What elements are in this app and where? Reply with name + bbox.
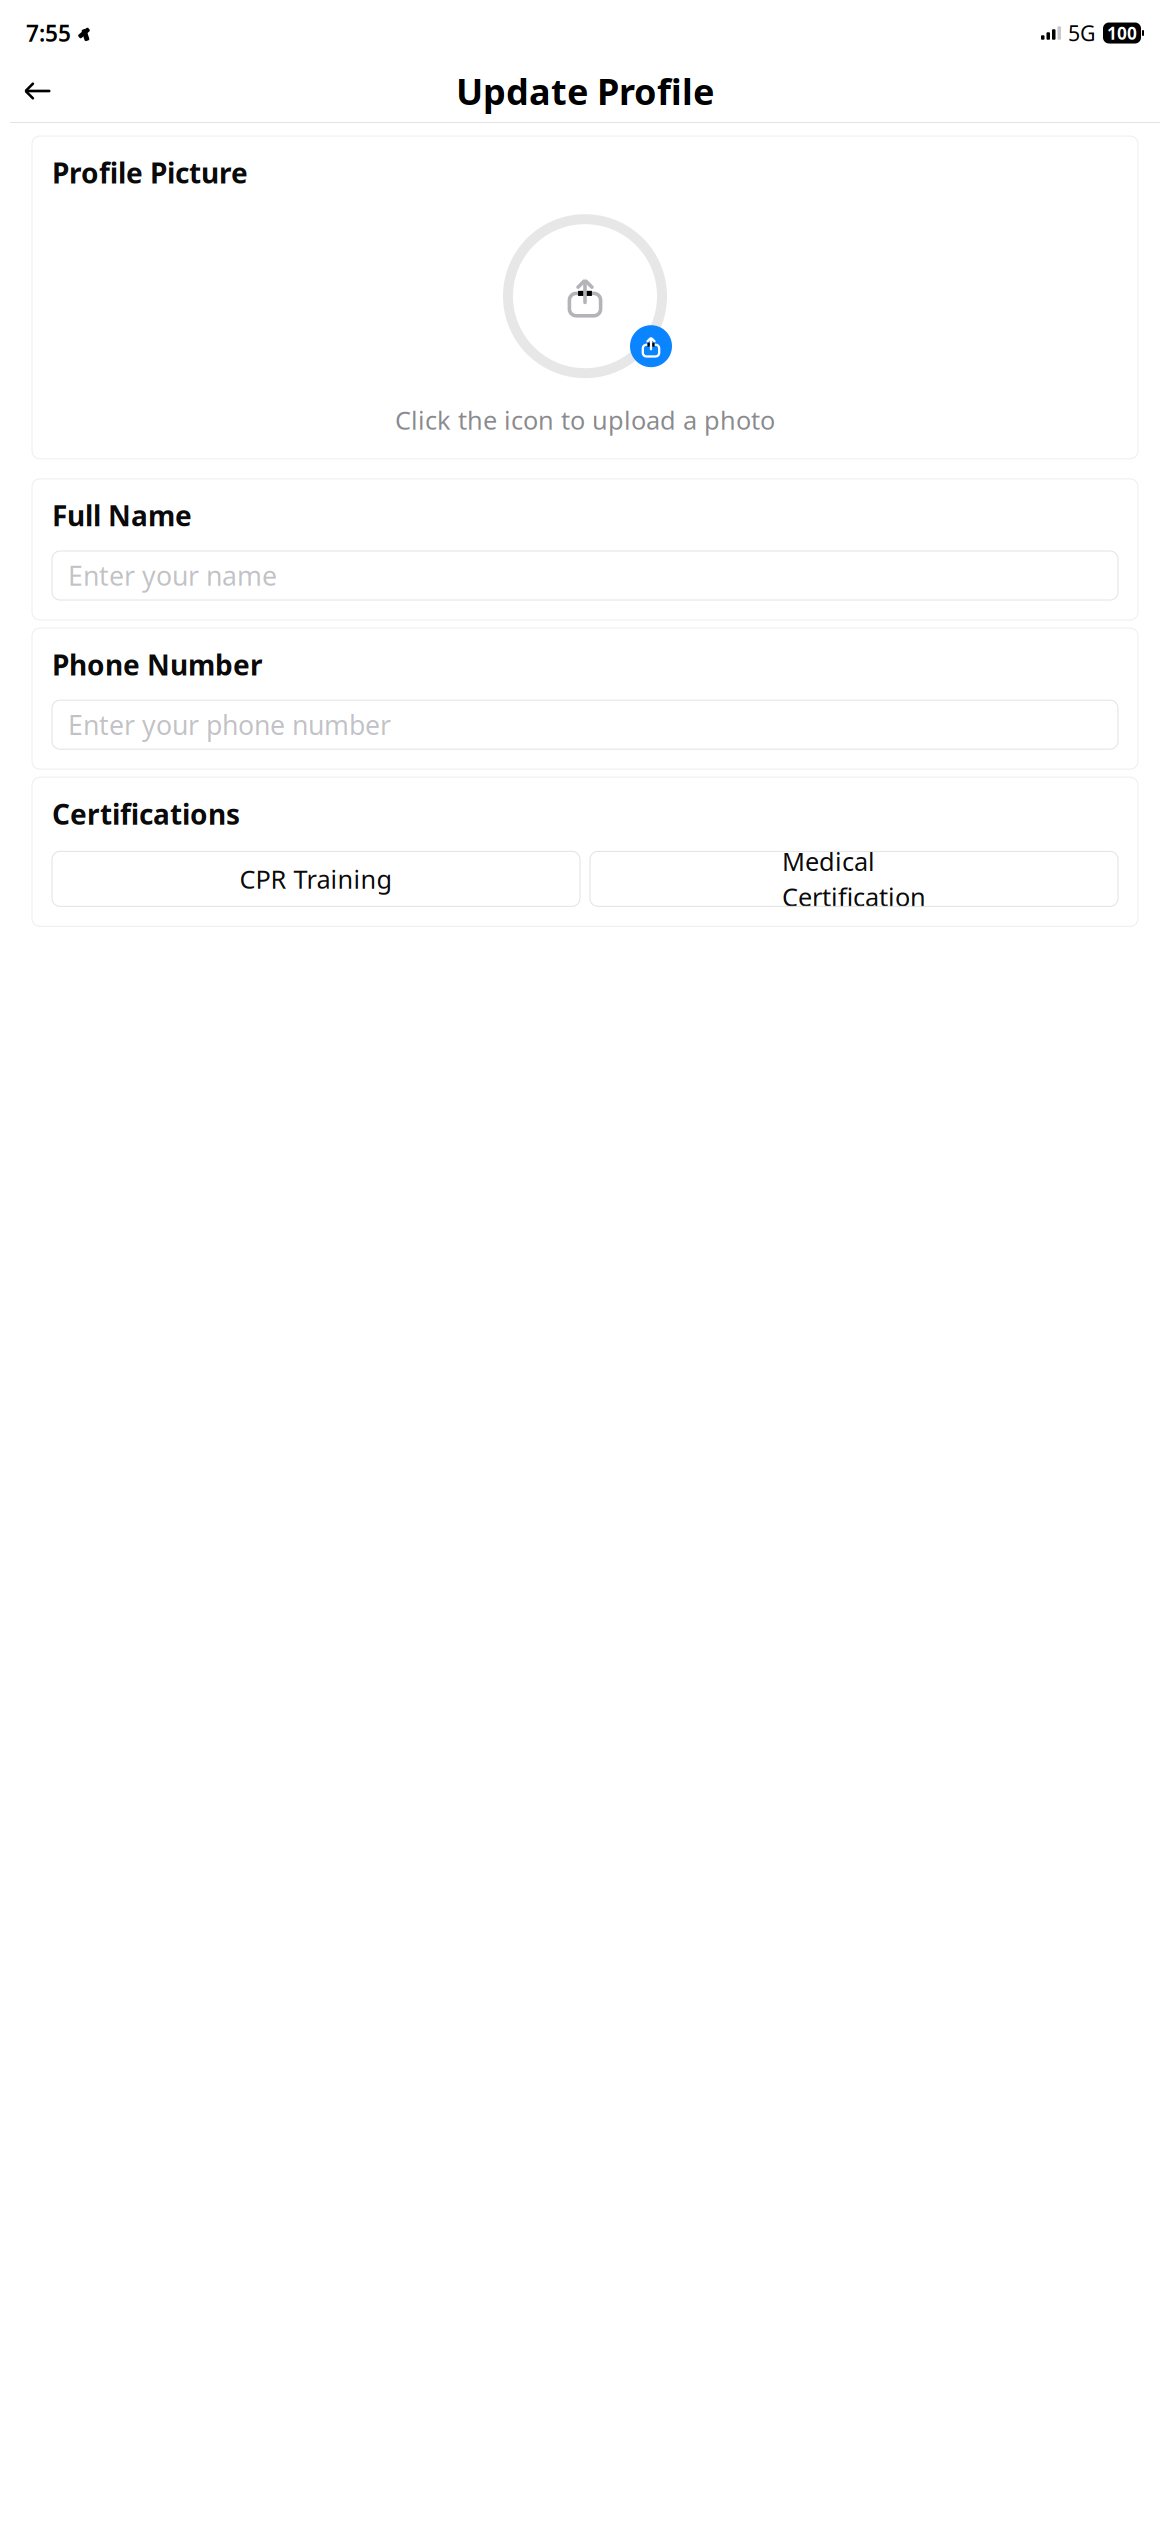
staticText: Full Name (52, 497, 192, 534)
button[interactable]: Back (16, 69, 60, 113)
button[interactable]: Upload photo (630, 325, 672, 367)
button[interactable]: CPR Training (52, 851, 580, 906)
staticText: Profile Picture (52, 154, 248, 191)
staticText: 100 (1107, 21, 1137, 44)
staticText: Medical (782, 844, 875, 878)
staticText: Update Profile (456, 67, 714, 115)
staticText: Certifications (52, 795, 240, 832)
staticText: Certification (782, 880, 926, 913)
staticText: 5G (1068, 19, 1096, 47)
staticText: 7:55 (26, 18, 71, 48)
staticText: Enter your name (68, 558, 277, 593)
staticText: Enter your phone number (68, 707, 391, 742)
staticText: CPR Training (239, 862, 392, 896)
staticText: Click the icon to upload a photo (395, 403, 775, 437)
button[interactable]: Enter your name (52, 551, 1118, 600)
staticText: Phone Number (52, 646, 263, 683)
button[interactable]: Medical (590, 851, 1118, 906)
button[interactable]: Upload photo (503, 214, 667, 378)
button[interactable]: Enter your phone number (52, 700, 1118, 749)
